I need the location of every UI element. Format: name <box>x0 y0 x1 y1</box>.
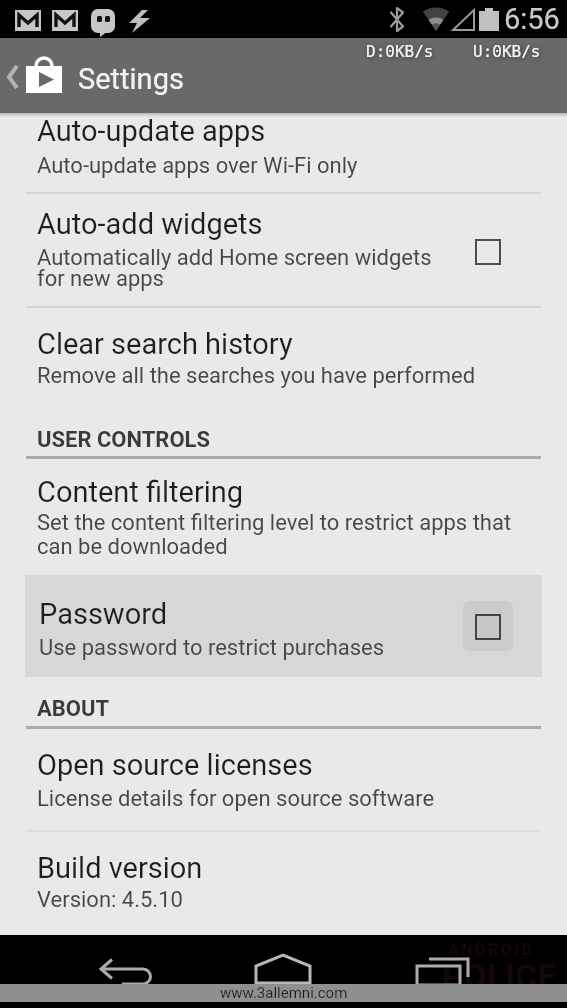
button[interactable]: Clear search history <box>0 308 567 412</box>
button[interactable]: Build version <box>0 832 567 935</box>
staticText: Auto-update apps <box>37 114 266 148</box>
staticText: Settings <box>78 62 184 96</box>
staticText: Password <box>39 597 168 631</box>
button[interactable] <box>398 935 488 1008</box>
staticText: Automatically add Home screen widgets <box>37 245 432 271</box>
staticText: Open source licenses <box>37 748 313 782</box>
staticText: Build version <box>37 851 203 885</box>
staticText: U:0KB/s <box>473 42 541 61</box>
button[interactable]: Settings <box>0 38 180 113</box>
button[interactable]: Content filtering <box>0 459 567 573</box>
staticText: D:0KB/s <box>366 42 434 61</box>
staticText: Auto-add widgets <box>37 207 263 241</box>
button[interactable]: Auto-add widgets <box>0 194 567 308</box>
button[interactable]: Auto-update apps <box>0 113 567 194</box>
staticText: Content filtering <box>37 475 244 509</box>
staticText: 6:56 <box>504 2 560 36</box>
staticText: Remove all the searches you have perform… <box>37 363 476 389</box>
button[interactable]: Open source licenses <box>0 729 567 832</box>
staticText: for new apps <box>37 266 164 292</box>
staticText: www.3allemni.com <box>220 984 348 1002</box>
staticText: Set the content filtering level to restr… <box>37 510 512 536</box>
staticText: License details for open source software <box>37 786 435 812</box>
staticText: can be downloaded <box>37 534 228 560</box>
staticText: USER CONTROLS <box>37 427 211 453</box>
button[interactable]: Password <box>25 575 542 677</box>
staticText: POLICE <box>442 957 557 996</box>
button[interactable] <box>78 935 168 1008</box>
staticText: ABOUT <box>37 696 110 722</box>
staticText: ANDROID <box>448 940 535 959</box>
staticText: Version: 4.5.10 <box>37 887 183 913</box>
staticText: Use password to restrict purchases <box>39 635 385 661</box>
button[interactable] <box>238 935 328 1008</box>
staticText: Clear search history <box>37 327 293 361</box>
staticText: Auto-update apps over Wi-Fi only <box>37 153 358 179</box>
